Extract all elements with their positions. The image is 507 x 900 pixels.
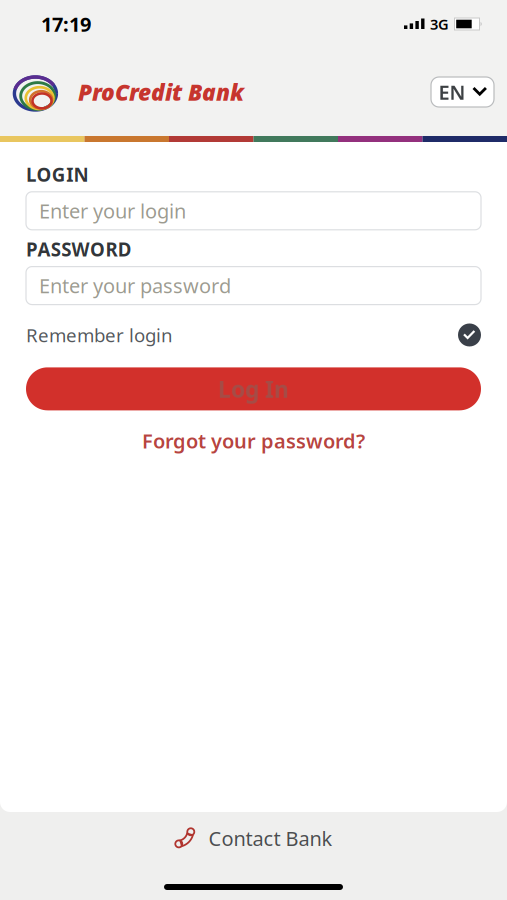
staticText: Enter your password xyxy=(39,272,231,299)
button[interactable]: Contact Bank xyxy=(174,812,332,852)
button[interactable]: Remember login, on xyxy=(26,323,481,347)
staticText: Contact Bank xyxy=(208,825,332,852)
textField[interactable]: Enter your password xyxy=(39,272,481,299)
button[interactable]: Forgot your password? xyxy=(142,427,365,454)
textField[interactable]: Enter your login xyxy=(39,197,481,224)
staticText: ProCredit Bank xyxy=(78,77,244,107)
staticText: EN xyxy=(438,79,465,105)
staticText: LOGIN xyxy=(26,162,89,187)
staticText: Remember login xyxy=(26,323,173,347)
staticText: 17:19 xyxy=(41,11,91,37)
button[interactable]: Log In xyxy=(26,367,481,410)
staticText: Enter your login xyxy=(39,197,186,224)
button[interactable]: Language: English xyxy=(431,77,494,107)
staticText: PASSWORD xyxy=(26,237,132,262)
staticText: 3G xyxy=(430,14,449,34)
staticText: Forgot your password? xyxy=(142,427,365,454)
staticText: Log In xyxy=(218,374,289,404)
